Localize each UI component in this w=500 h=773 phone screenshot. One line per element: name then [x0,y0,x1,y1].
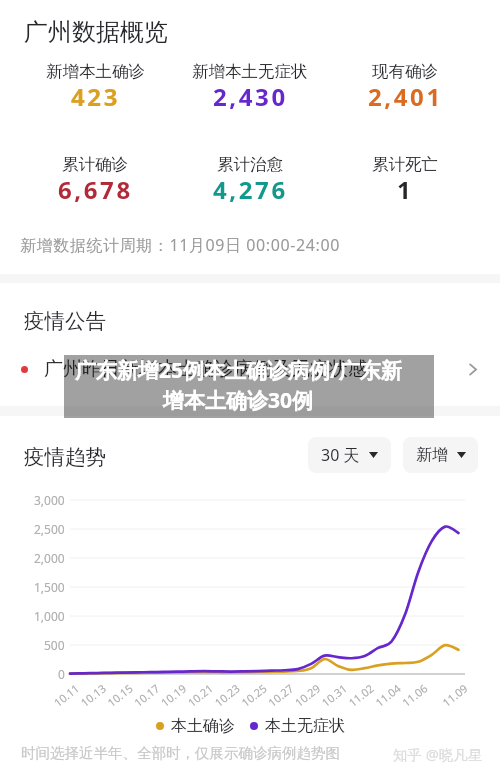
other: 查看详情 [465,362,480,377]
staticText: 现有确诊 [372,61,438,82]
staticText: 423 [71,80,120,113]
button[interactable]: 广州昨日新增本土确诊病例及无症状感 [0,347,500,391]
staticText: 疫情公告 [24,308,106,334]
staticText: 2,401 [368,80,443,113]
staticText: 本土无症状 [265,716,345,736]
staticText: 疫情趋势 [24,444,106,470]
staticText: 累计确诊 [62,154,128,175]
staticText: 6,678 [58,173,133,206]
staticText: 新增 [416,445,448,465]
staticText: 广州昨日新增本土确诊病例及无症状感 [44,357,455,381]
button[interactable]: 新增 [403,437,478,473]
staticText: 累计死亡 [372,154,438,175]
staticText: 广东新增25例本土确诊病例/广东新 [75,356,402,385]
staticText: 30 天 [321,444,360,466]
staticText: 本土确诊 [171,716,235,736]
staticText: 累计治愈 [217,154,283,175]
staticText: 知乎 @晓凡星 [393,744,483,764]
staticText: 1 [397,173,414,206]
button[interactable]: 30 天 [308,437,391,473]
staticText: 新增数据统计周期：11月09日 00:00-24:00 [20,234,340,256]
staticText: 广州数据概览 [24,17,168,47]
staticText: 4,276 [213,173,288,206]
staticText: 2,430 [213,80,288,113]
staticText: 新增本土确诊 [46,61,145,82]
staticText: 新增本土无症状 [192,61,308,82]
staticText: 增本土确诊30例 [163,386,314,415]
staticText: 时间选择近半年、全部时，仅展示确诊病例趋势图 [21,744,340,762]
